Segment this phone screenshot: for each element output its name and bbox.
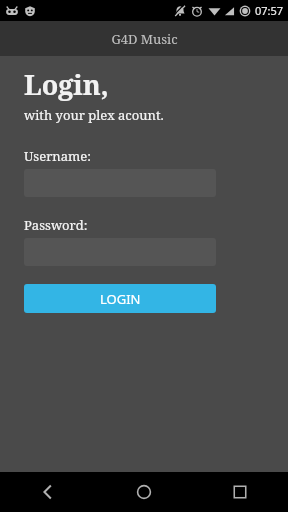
staticText: with your plex acount. [24,106,164,124]
staticText: 07:57 [255,3,284,18]
button[interactable]: Recents [192,472,288,512]
button[interactable]: LOGIN [24,284,216,313]
button[interactable]: Back [0,472,96,512]
button[interactable]: Home [96,472,192,512]
staticText: G4D Music [111,30,178,48]
staticText: Username: [24,147,91,165]
staticText: LOGIN [100,290,141,308]
staticText: Login, [24,66,109,103]
staticText: Password: [24,216,88,234]
